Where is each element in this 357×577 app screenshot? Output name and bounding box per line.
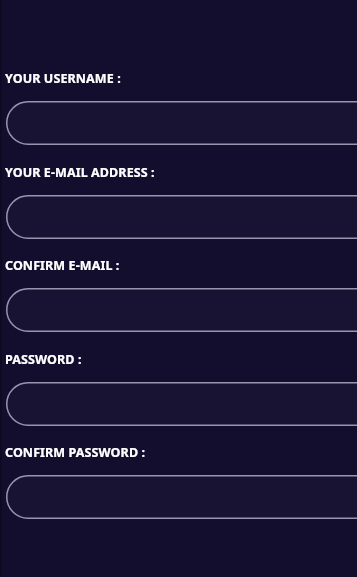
staticText: CONFIRM E-MAIL : — [5, 257, 120, 274]
staticText: CONFIRM PASSWORD : — [5, 444, 146, 461]
staticText: YOUR USERNAME : — [5, 70, 121, 87]
button[interactable]: YOUR USERNAME : — [0, 101, 357, 145]
button[interactable]: PASSWORD : — [0, 382, 357, 426]
staticText: PASSWORD : — [5, 351, 82, 368]
button[interactable]: CONFIRM E-MAIL : — [0, 288, 357, 332]
button[interactable]: CONFIRM PASSWORD : — [0, 475, 357, 519]
button[interactable]: YOUR E-MAIL ADDRESS : — [0, 195, 357, 239]
staticText: YOUR E-MAIL ADDRESS : — [5, 164, 155, 181]
